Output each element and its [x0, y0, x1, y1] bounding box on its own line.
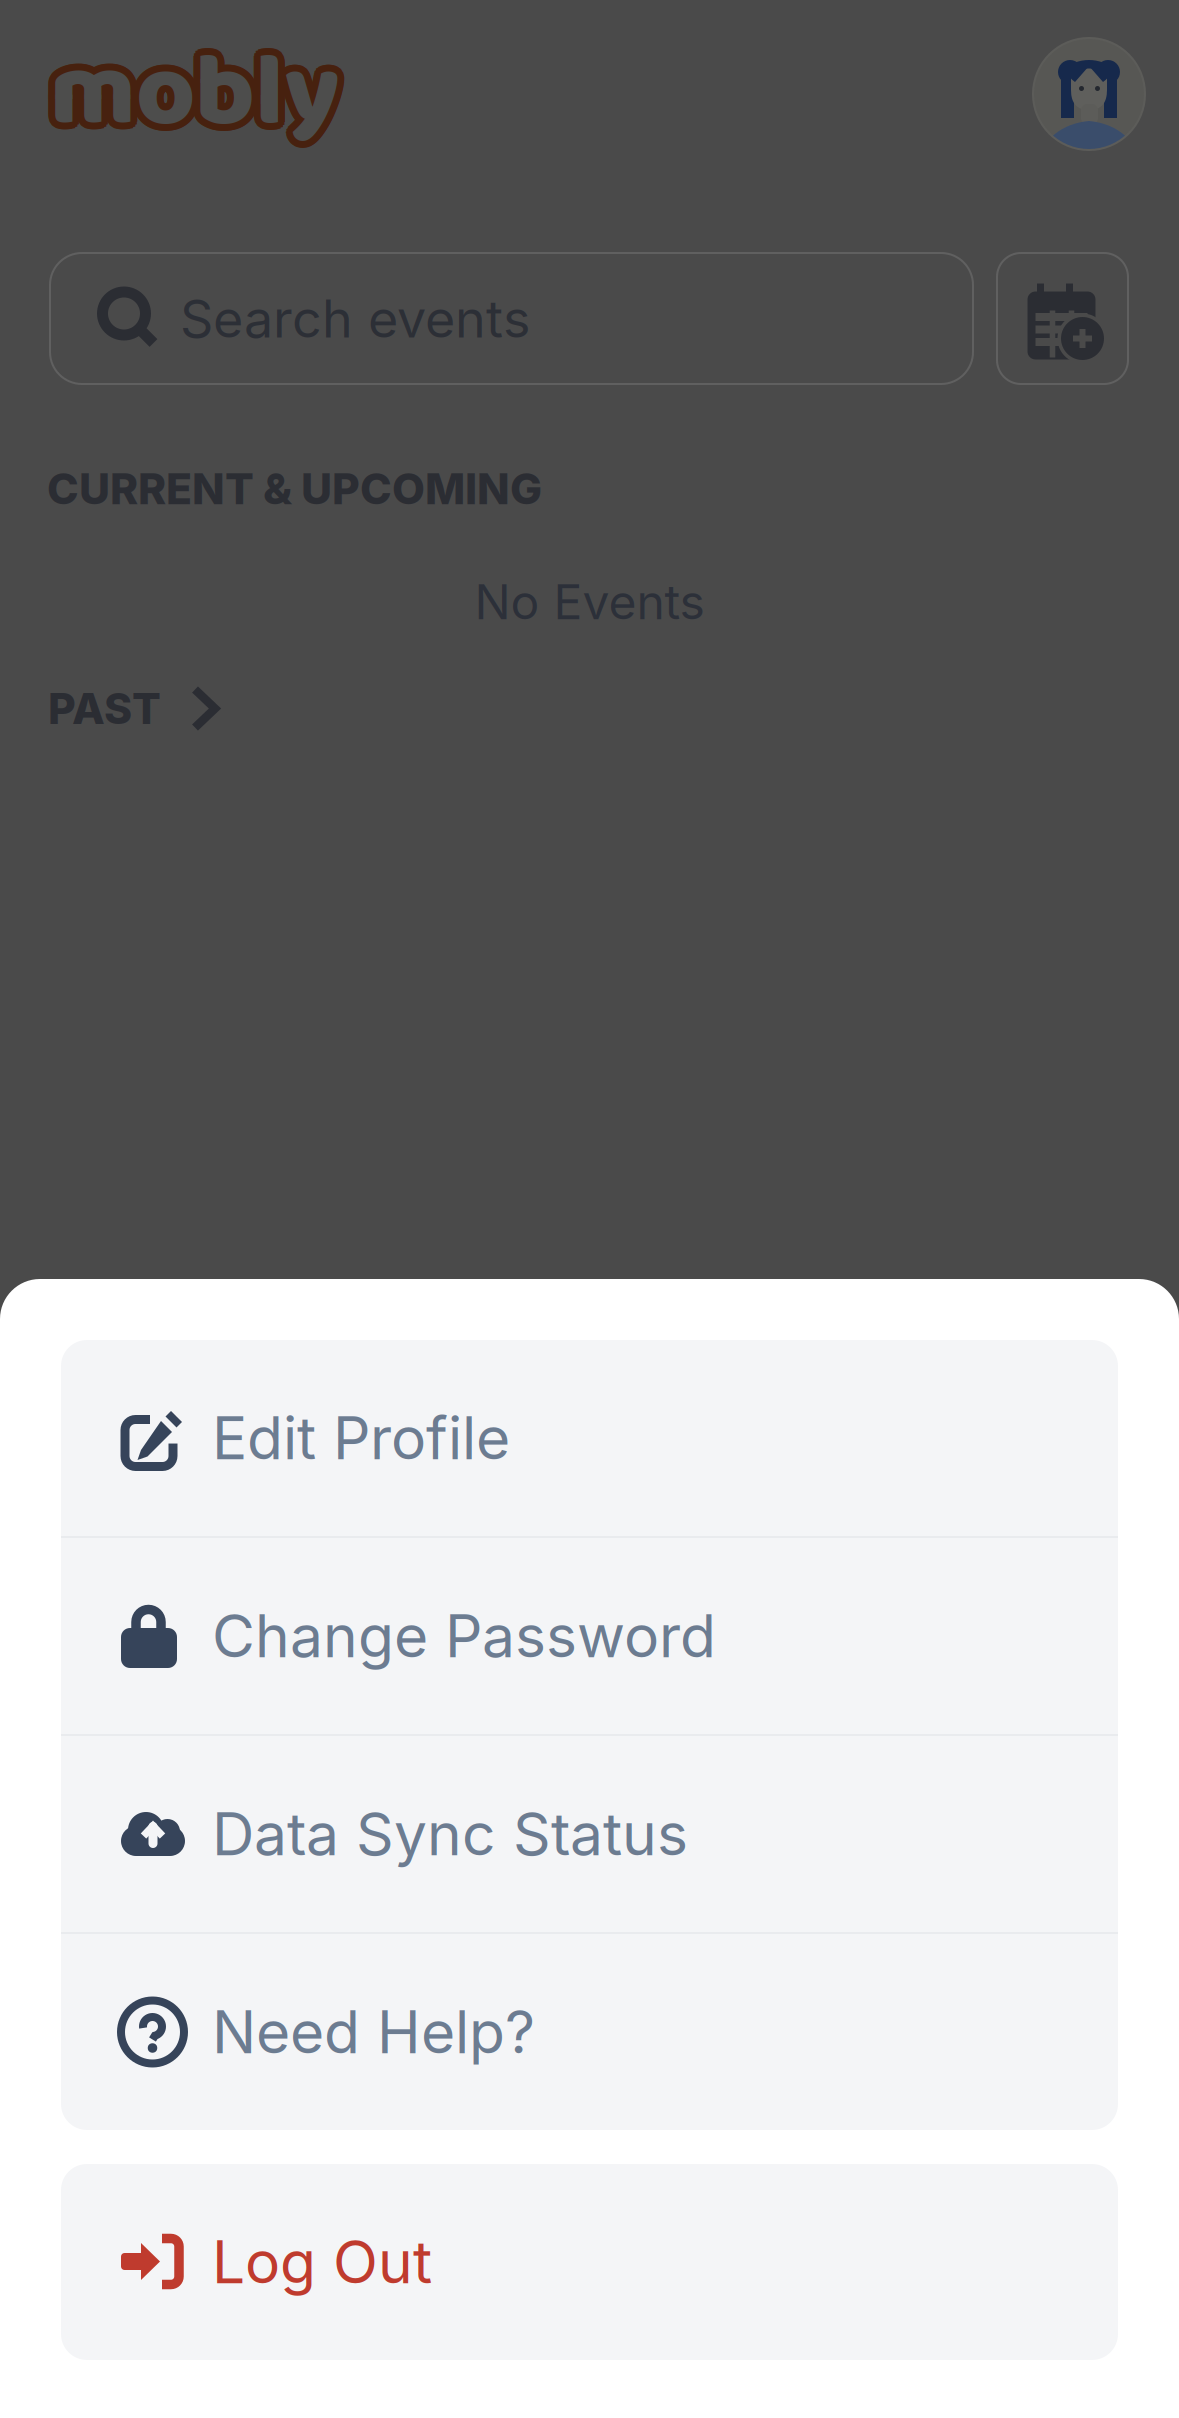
- staticText: mobly: [57, 13, 347, 175]
- staticText: mobly: [56, 10, 346, 172]
- staticText: Log Out: [212, 2226, 432, 2297]
- staticText: mobly: [45, 8, 335, 170]
- button[interactable]: Add event: [997, 253, 1128, 384]
- button[interactable]: Edit Profile: [61, 1340, 1118, 1536]
- staticText: mobly: [45, 18, 335, 180]
- staticText: mobly: [43, 13, 333, 175]
- staticText: mobly: [55, 18, 345, 180]
- staticText: CURRENT & UPCOMING: [47, 463, 542, 515]
- staticText: mobly: [43, 15, 333, 178]
- staticText: mobly: [50, 6, 340, 168]
- button[interactable]: Search events: [50, 253, 973, 384]
- staticText: PAST: [48, 683, 161, 734]
- button[interactable]: PAST: [48, 683, 220, 734]
- staticText: Change Password: [212, 1600, 716, 1671]
- staticText: No Events: [474, 573, 704, 631]
- staticText: mobly: [43, 10, 333, 172]
- button[interactable]: Data Sync Status: [61, 1736, 1118, 1932]
- button[interactable]: Need Help?: [61, 1934, 1118, 2130]
- staticText: Search events: [180, 287, 530, 350]
- staticText: mobly: [47, 19, 337, 182]
- button[interactable]: Profile: [1031, 36, 1147, 152]
- staticText: Edit Profile: [212, 1402, 510, 1473]
- staticText: mobly: [47, 6, 337, 169]
- staticText: mobly: [50, 13, 340, 175]
- staticText: mobly: [55, 8, 345, 170]
- staticText: Data Sync Status: [212, 1798, 688, 1869]
- staticText: mobly: [56, 15, 346, 178]
- staticText: Need Help?: [212, 1996, 535, 2067]
- staticText: mobly: [53, 6, 343, 169]
- button[interactable]: Log Out: [61, 2164, 1118, 2360]
- button[interactable]: Change Password: [61, 1538, 1118, 1734]
- staticText: mobly: [50, 20, 340, 182]
- staticText: mobly: [53, 19, 343, 182]
